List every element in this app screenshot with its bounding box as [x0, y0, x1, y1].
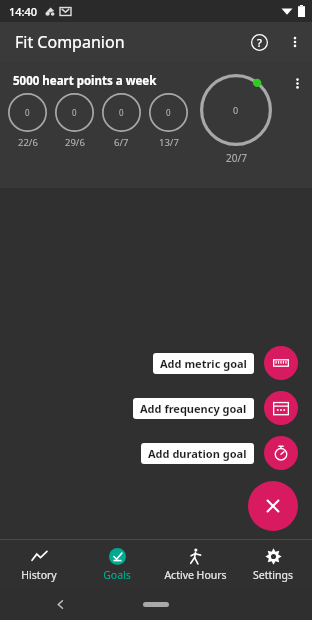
- button[interactable]: Goal options: [282, 68, 312, 98]
- button[interactable]: Add duration goal: [141, 443, 254, 464]
- button[interactable]: Add frequency goal: [133, 398, 254, 419]
- button[interactable]: History: [0, 542, 78, 587]
- staticText: 0: [166, 107, 171, 118]
- button[interactable]: Help: [240, 23, 278, 61]
- staticText: 20/7: [226, 151, 247, 165]
- staticText: 0: [233, 104, 239, 116]
- button[interactable]: Back: [48, 592, 72, 616]
- staticText: 5000 heart points a week: [13, 73, 157, 89]
- button[interactable]: Add metric goal: [264, 346, 298, 380]
- button[interactable]: More options: [278, 25, 312, 59]
- staticText: 22/6: [18, 136, 38, 149]
- staticText: 13/7: [159, 136, 179, 149]
- staticText: Add frequency goal: [140, 401, 247, 416]
- staticText: Active Hours: [164, 568, 227, 582]
- staticText: Add metric goal: [160, 356, 247, 371]
- staticText: Fit Companion: [15, 31, 125, 53]
- button[interactable]: Close menu: [248, 481, 298, 531]
- staticText: Add duration goal: [148, 446, 247, 461]
- staticText: ?: [257, 35, 262, 50]
- button[interactable]: Goals: [78, 542, 156, 587]
- staticText: 29/6: [65, 136, 85, 149]
- staticText: 0: [25, 107, 30, 118]
- staticText: 14:40: [9, 4, 38, 19]
- button[interactable]: 5000 heart points a week: [0, 62, 312, 188]
- button[interactable]: Settings: [234, 542, 312, 587]
- button[interactable]: Active Hours: [156, 542, 234, 587]
- staticText: Goals: [103, 568, 131, 582]
- staticText: 6/7: [114, 136, 129, 149]
- staticText: 0: [119, 107, 124, 118]
- staticText: Settings: [253, 568, 293, 582]
- button[interactable]: Add frequency goal: [264, 391, 298, 425]
- button[interactable]: Home: [143, 602, 169, 607]
- staticText: 0: [72, 107, 77, 118]
- button[interactable]: Add metric goal: [153, 353, 254, 374]
- button[interactable]: Add duration goal: [264, 436, 298, 470]
- staticText: History: [21, 568, 57, 582]
